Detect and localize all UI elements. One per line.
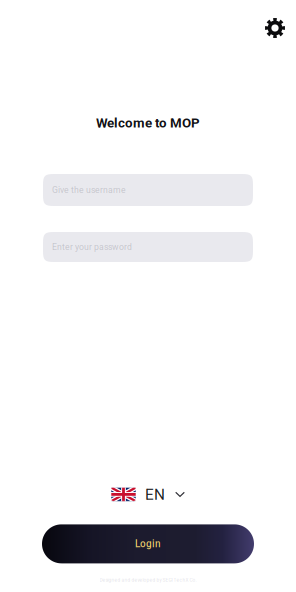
button[interactable]: Give the username <box>43 174 253 206</box>
staticText: Give the username <box>52 185 126 195</box>
staticText: EN <box>145 485 165 503</box>
button[interactable]: EN <box>108 482 188 506</box>
staticText: Designed and developed by SEGI TechX Co. <box>99 577 196 583</box>
staticText: Welcome to MOP <box>96 115 200 131</box>
button[interactable]: Enter your password <box>43 232 253 262</box>
button[interactable]: Login <box>42 524 254 563</box>
staticText: Login <box>135 538 161 550</box>
staticText: Enter your password <box>52 242 132 252</box>
button[interactable]: Settings <box>261 14 289 42</box>
